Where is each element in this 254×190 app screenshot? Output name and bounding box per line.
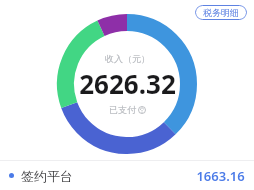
button[interactable]: 签约平台 [0, 161, 254, 190]
staticText: 签约平台 [21, 168, 73, 184]
button[interactable]: 税务明细 [195, 5, 247, 20]
staticText: 1663.16 [196, 167, 245, 185]
staticText: 2626.32 [79, 66, 176, 101]
other: Help about paid amount [138, 106, 146, 114]
staticText: 收入（元） [105, 53, 150, 64]
staticText: 税务明细 [203, 7, 239, 18]
staticText: 已支付 [109, 104, 136, 115]
